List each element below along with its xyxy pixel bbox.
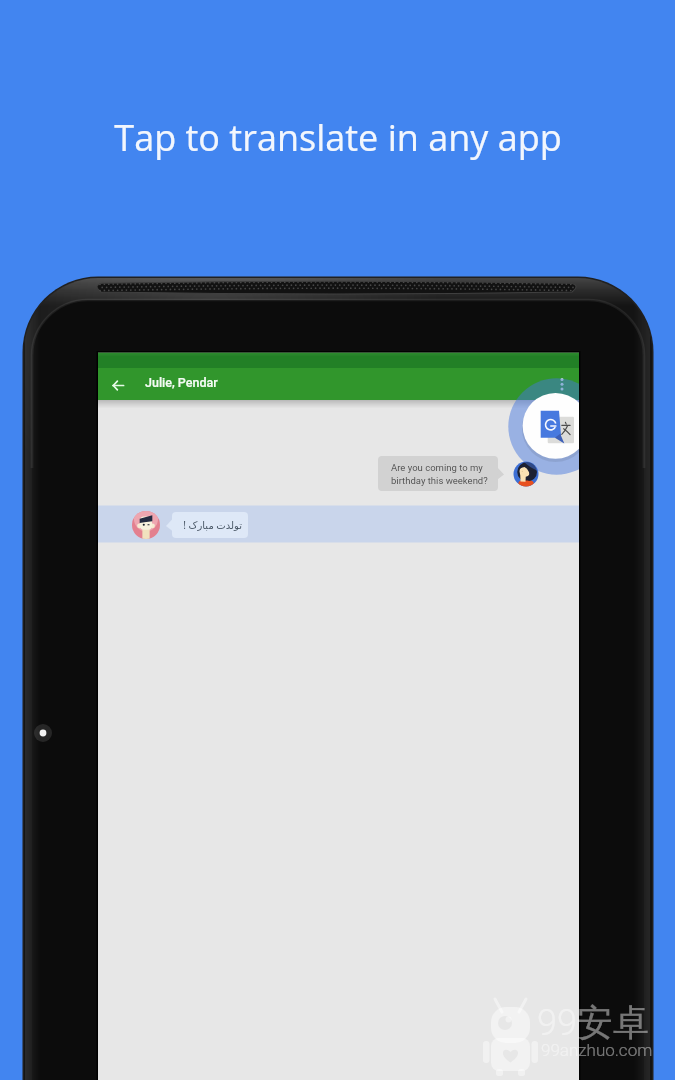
staticText: تولدت مبارک ! — [183, 518, 242, 532]
staticText: Julie, Pendar — [145, 375, 218, 390]
staticText: 99安卓 — [537, 1000, 649, 1045]
button[interactable]: More options — [552, 370, 576, 400]
staticText: Are you coming to my birthday this weeke… — [391, 462, 488, 487]
staticText: 99anzhuo.com — [541, 1040, 653, 1060]
button[interactable] — [98, 445, 579, 503]
staticText: Tap to translate in any app — [114, 113, 562, 162]
button[interactable] — [98, 505, 579, 543]
button[interactable]: Tap to translate — [518, 398, 579, 459]
button[interactable]: Back — [104, 368, 138, 402]
